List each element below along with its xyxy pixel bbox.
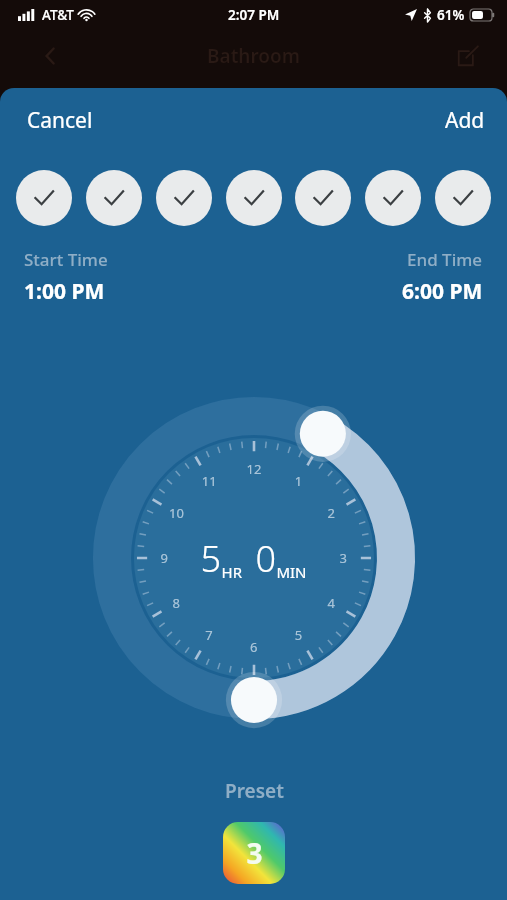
button[interactable]: Day selected <box>295 170 351 226</box>
staticText: 1:00 PM <box>24 277 105 306</box>
button[interactable]: Day selected <box>156 170 212 226</box>
staticText: 3 <box>246 834 263 872</box>
staticText: Bathroom <box>207 43 301 69</box>
button[interactable]: Back <box>40 45 62 67</box>
button[interactable]: Edit <box>457 45 479 67</box>
button[interactable]: End Time <box>402 248 483 306</box>
staticText: Start Time <box>24 248 108 271</box>
button[interactable]: Duration dial 5 hours 0 minutes <box>71 375 437 741</box>
button[interactable]: Day selected <box>226 170 282 226</box>
button[interactable]: Day selected <box>435 170 491 226</box>
staticText: 2:07 PM <box>228 6 280 24</box>
staticText: Preset <box>225 778 284 804</box>
staticText: End Time <box>407 248 483 271</box>
staticText: Add <box>445 106 485 135</box>
staticText: 61% <box>437 6 465 24</box>
button[interactable]: Preset 3 <box>223 822 285 884</box>
staticText: AT&T <box>42 6 74 24</box>
staticText: Cancel <box>27 106 93 135</box>
button[interactable]: Cancel <box>27 106 93 135</box>
button[interactable]: Add <box>445 106 485 135</box>
button[interactable]: Day selected <box>16 170 72 226</box>
button[interactable]: Day selected <box>365 170 421 226</box>
staticText: 6:00 PM <box>402 277 483 306</box>
button[interactable]: Start Time <box>24 248 108 306</box>
button[interactable]: Day selected <box>86 170 142 226</box>
